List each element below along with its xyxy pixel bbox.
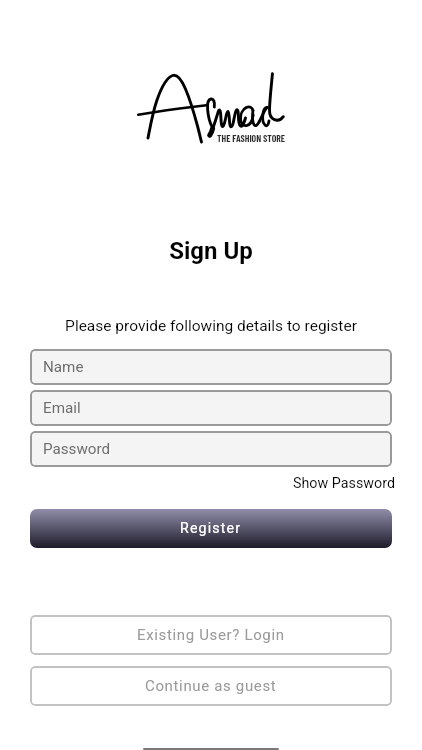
button[interactable]: Continue as guest xyxy=(30,666,392,706)
button[interactable]: Show Password xyxy=(293,472,395,495)
staticText: Sign Up xyxy=(0,237,422,265)
button[interactable]: Password xyxy=(30,431,392,467)
staticText: Password xyxy=(43,440,111,458)
button[interactable]: Register xyxy=(30,509,392,548)
button[interactable]: Name xyxy=(30,349,392,385)
button[interactable]: Email xyxy=(30,390,392,426)
button[interactable]: Existing User? Login xyxy=(30,615,392,655)
staticText: Existing User? Login xyxy=(137,626,285,644)
staticText: Continue as guest xyxy=(145,677,277,695)
staticText: Register xyxy=(180,520,242,537)
staticText: Show Password xyxy=(293,475,395,492)
staticText: Email xyxy=(43,399,81,417)
staticText: THE FASHION STORE xyxy=(217,132,286,144)
staticText: Please provide following details to regi… xyxy=(0,317,422,335)
staticText: Name xyxy=(43,358,84,376)
